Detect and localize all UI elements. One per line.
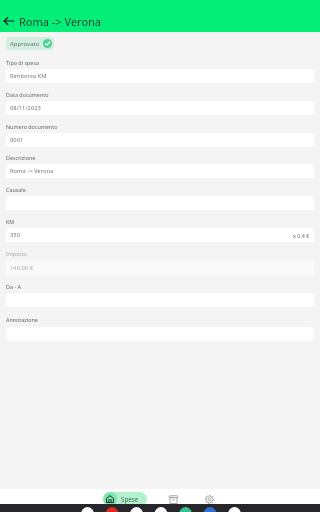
button[interactable]: Archivio [166, 492, 180, 506]
button[interactable]: Roma -> Verona [6, 164, 314, 178]
button[interactable]: 0001 [6, 133, 314, 147]
staticText: Rimborso KM [10, 72, 47, 80]
staticText: Annotazione [6, 316, 38, 323]
staticText: Descrizione [6, 154, 36, 161]
staticText: Data documento [6, 91, 49, 98]
staticText: 350 [10, 231, 20, 239]
staticText: x 0.4 € [293, 232, 310, 239]
staticText: Numero documento [6, 123, 58, 130]
button[interactable]: Approvato [6, 37, 54, 50]
button[interactable]: 140,00 € [6, 261, 314, 275]
button[interactable]: 08/11/2023 [6, 101, 314, 115]
staticText: 140,00 € [10, 264, 33, 272]
staticText: Da - A [6, 283, 21, 290]
button[interactable]: 350 [6, 228, 314, 242]
button[interactable]: Spese [103, 492, 147, 506]
staticText: 0001 [10, 136, 24, 144]
button[interactable]: Rimborso KM [6, 69, 314, 83]
button[interactable]: Indietro [2, 14, 16, 28]
staticText: Approvato [10, 40, 40, 48]
button[interactable]: Impostazioni [202, 492, 216, 506]
staticText: Tipo di spesa [6, 59, 40, 66]
staticText: Causale [6, 186, 26, 193]
staticText: Roma -> Verona [19, 14, 102, 29]
staticText: Importo [6, 250, 27, 257]
staticText: Spese [121, 495, 139, 503]
staticText: Roma -> Verona [10, 167, 54, 175]
staticText: 08/11/2023 [10, 104, 41, 112]
staticText: KM [6, 218, 15, 225]
